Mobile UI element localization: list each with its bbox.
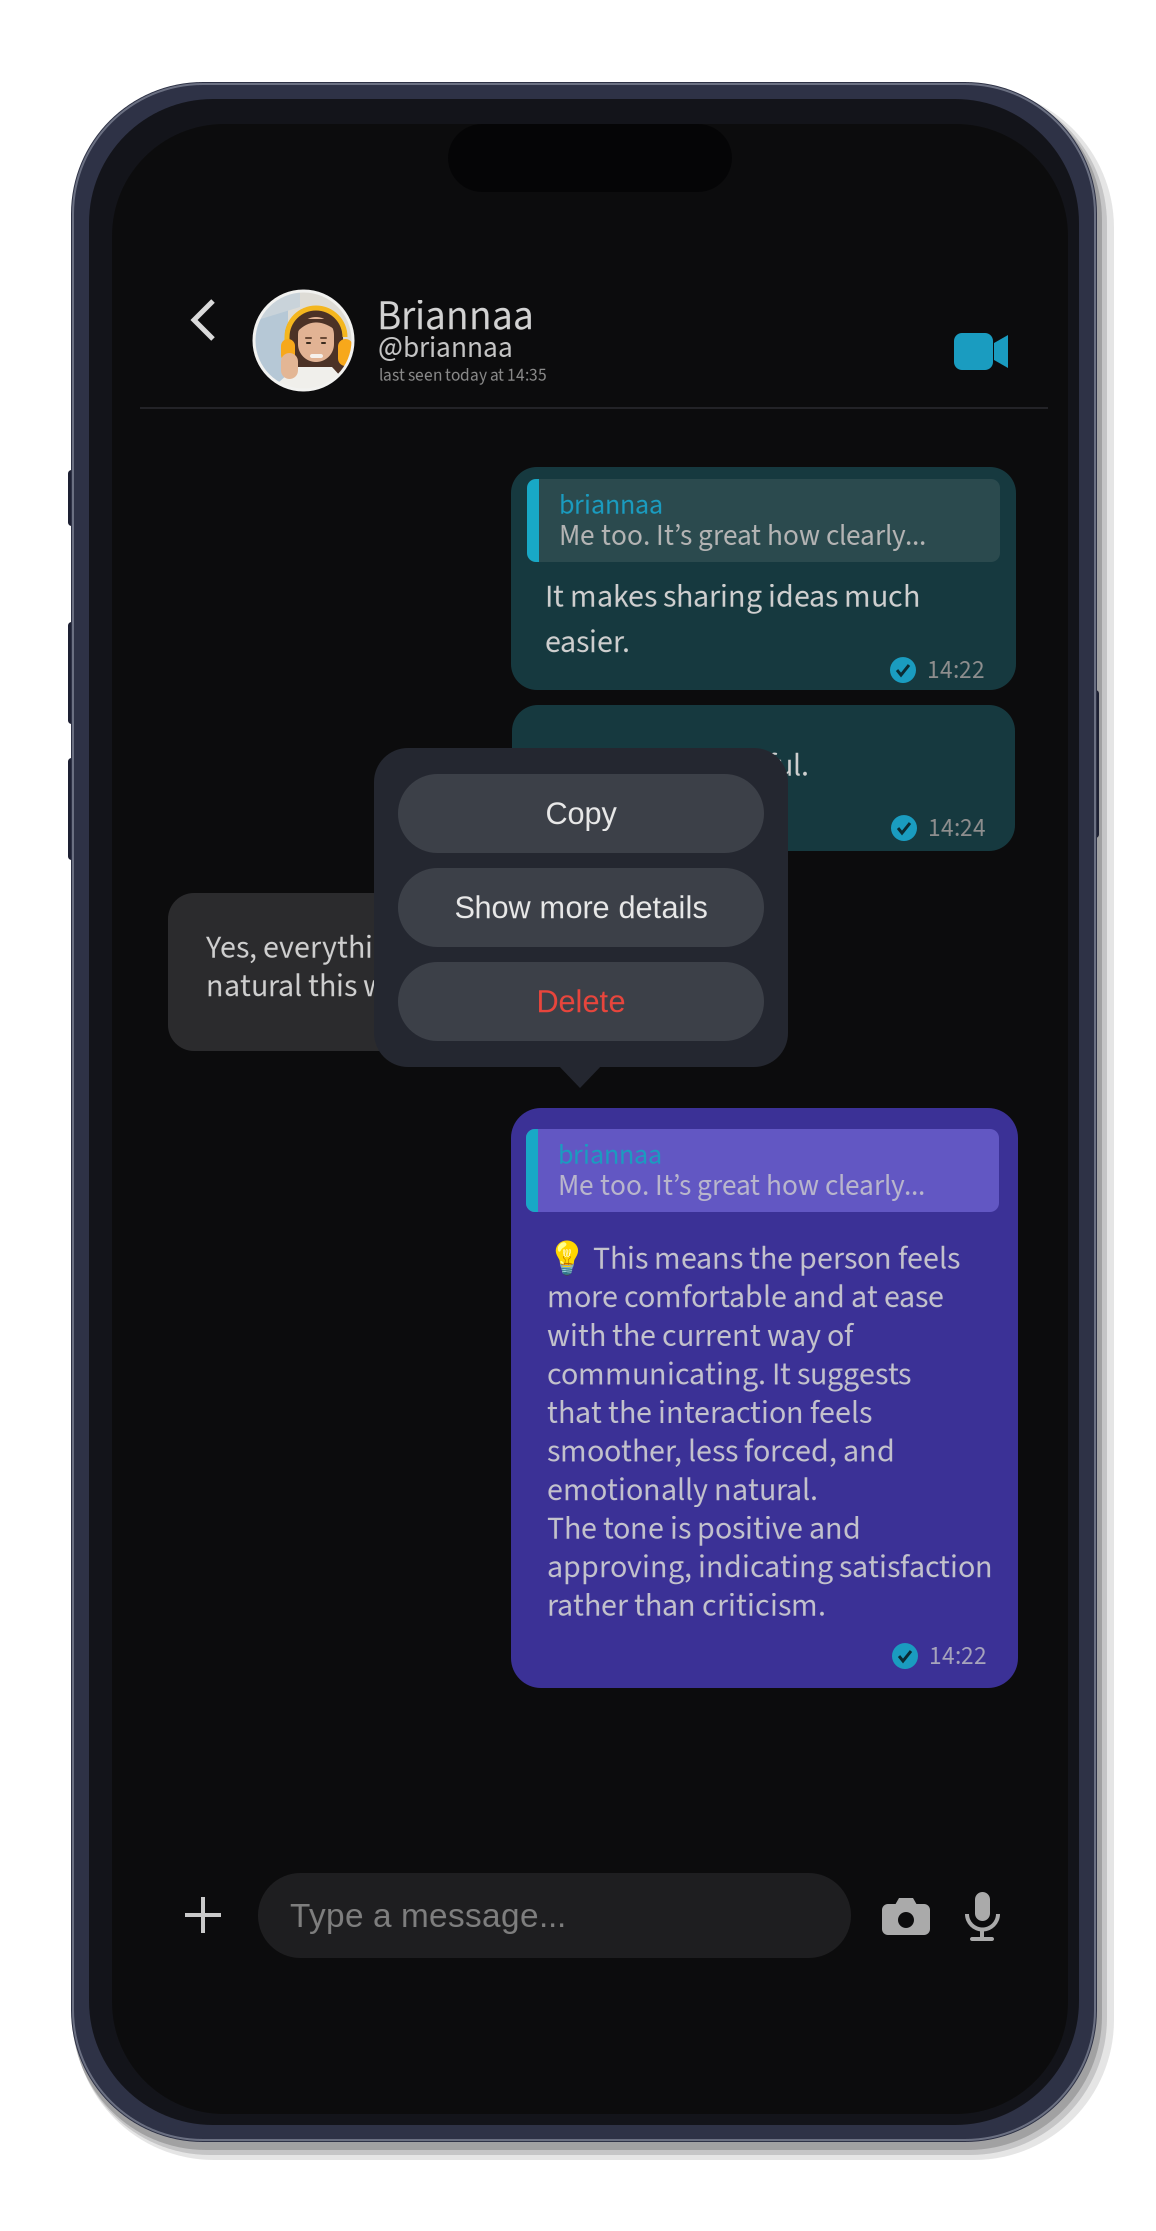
button[interactable]: Video call <box>938 324 1008 380</box>
button[interactable]: Voice message <box>959 1890 1005 1950</box>
button[interactable]: Copy <box>398 774 764 853</box>
staticText: Briannaa <box>377 287 534 346</box>
staticText: @briannaa <box>378 327 513 369</box>
staticText: briannaa <box>558 1135 662 1175</box>
staticText: Copy <box>545 796 616 831</box>
staticText: Delete <box>536 984 625 1019</box>
button[interactable]: Delete <box>398 962 764 1041</box>
button[interactable]: Camera <box>877 1891 939 1943</box>
staticText: Show more details <box>454 890 707 925</box>
staticText: 14:22 <box>927 652 985 688</box>
button[interactable]: Back <box>172 275 234 365</box>
staticText: Me too. It’s great how clearly... <box>558 1165 925 1207</box>
staticText: Me too. It’s great how clearly... <box>559 515 926 557</box>
staticText: It makes sharing ideas much easier. <box>545 574 920 665</box>
staticText: That’s really helpful. <box>542 743 809 789</box>
staticText: briannaa <box>559 485 663 525</box>
button[interactable]: Show more details <box>398 868 764 947</box>
staticText: last seen today at 14:35 <box>379 363 547 388</box>
staticText: 14:22 <box>929 1638 987 1674</box>
staticText: Type a message... <box>290 1897 566 1934</box>
staticText: 14:24 <box>928 810 986 846</box>
staticText: Yes, everything feels more natural this … <box>206 925 552 1009</box>
button[interactable]: Attach <box>172 1884 234 1946</box>
staticText: 💡 This means the person feels more comfo… <box>547 1236 993 1629</box>
